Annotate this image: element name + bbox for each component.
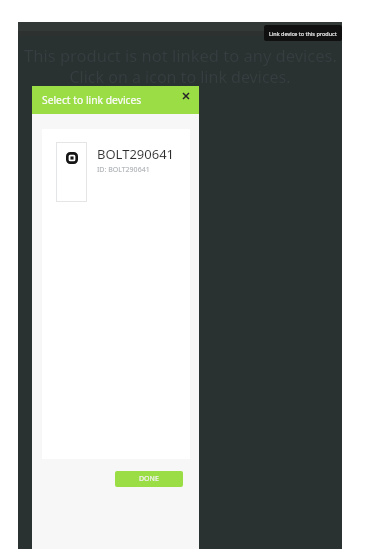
staticText: ID: BOLT290641 — [97, 165, 150, 175]
button[interactable]: BOLT290641 — [56, 142, 174, 202]
staticText: BOLT290641 — [97, 145, 174, 163]
button[interactable]: Link device to this product — [264, 25, 342, 41]
staticText: Link device to this product — [269, 30, 337, 37]
staticText: Select to link devices — [42, 93, 142, 107]
staticText: DONE — [139, 474, 159, 484]
staticText: This product is not linked to any device… — [24, 44, 337, 66]
button[interactable]: DONE — [115, 471, 183, 487]
button[interactable]: Close dialog — [180, 90, 192, 102]
staticText: Click on a icon to link devices. — [69, 66, 291, 88]
